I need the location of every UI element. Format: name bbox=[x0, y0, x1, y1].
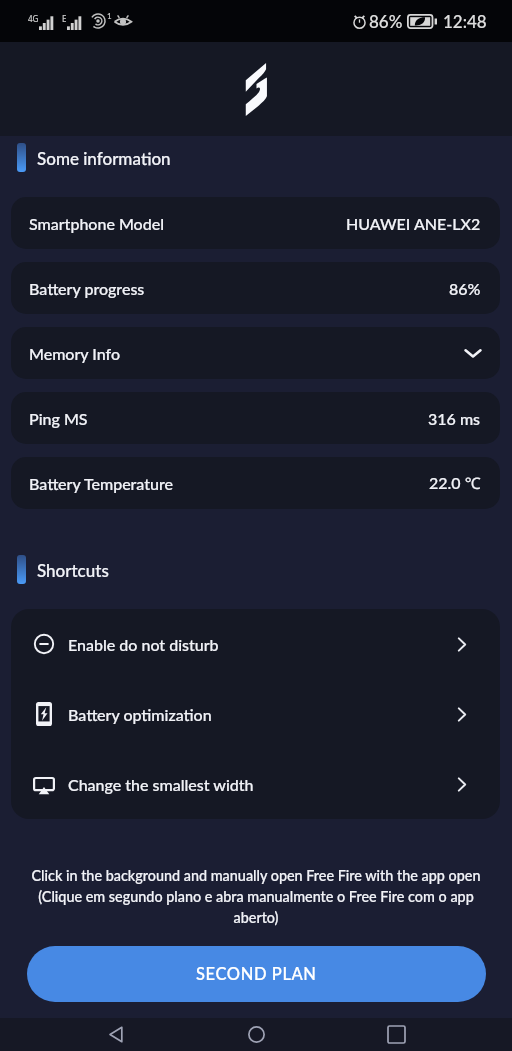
button[interactable]: Change the smallest width bbox=[11, 749, 500, 819]
staticText: Memory Info bbox=[29, 344, 121, 363]
staticText: 1 bbox=[107, 11, 112, 21]
staticText: Shortcuts bbox=[37, 560, 109, 580]
staticText: Battery optimization bbox=[68, 705, 212, 724]
staticText: Battery progress bbox=[29, 279, 145, 298]
staticText: 86% bbox=[449, 279, 481, 298]
button[interactable]: Battery optimization bbox=[11, 679, 500, 749]
button[interactable]: Enable do not disturb bbox=[11, 609, 500, 679]
button[interactable]: Recents bbox=[372, 1018, 420, 1051]
button[interactable]: Battery progress bbox=[11, 262, 500, 314]
button[interactable]: Smartphone Model bbox=[11, 197, 500, 249]
staticText: Some information bbox=[37, 148, 171, 168]
staticText: 86% bbox=[369, 11, 403, 31]
button[interactable]: SECOND PLAN bbox=[27, 946, 486, 1002]
staticText: Smartphone Model bbox=[29, 214, 164, 233]
staticText: Ping MS bbox=[29, 409, 88, 428]
staticText: HUAWEI ANE-LX2 bbox=[346, 214, 481, 233]
button[interactable]: Back bbox=[92, 1018, 140, 1051]
button[interactable]: Memory Info bbox=[11, 327, 500, 379]
staticText: Enable do not disturb bbox=[68, 635, 219, 654]
staticText: 4G bbox=[28, 13, 39, 24]
staticText: Battery Temperature bbox=[29, 474, 174, 493]
staticText: Click in the background and manually ope… bbox=[14, 867, 498, 926]
staticText: 12:48 bbox=[443, 11, 487, 31]
staticText: Change the smallest width bbox=[68, 775, 254, 794]
staticText: E bbox=[62, 13, 67, 24]
staticText: 316 ms bbox=[428, 409, 481, 428]
button[interactable]: Battery Temperature bbox=[11, 457, 500, 509]
button[interactable]: Ping MS bbox=[11, 392, 500, 444]
button[interactable]: Home bbox=[232, 1018, 280, 1051]
staticText: 22.0 ℃ bbox=[429, 472, 481, 494]
staticText: SECOND PLAN bbox=[196, 964, 317, 984]
